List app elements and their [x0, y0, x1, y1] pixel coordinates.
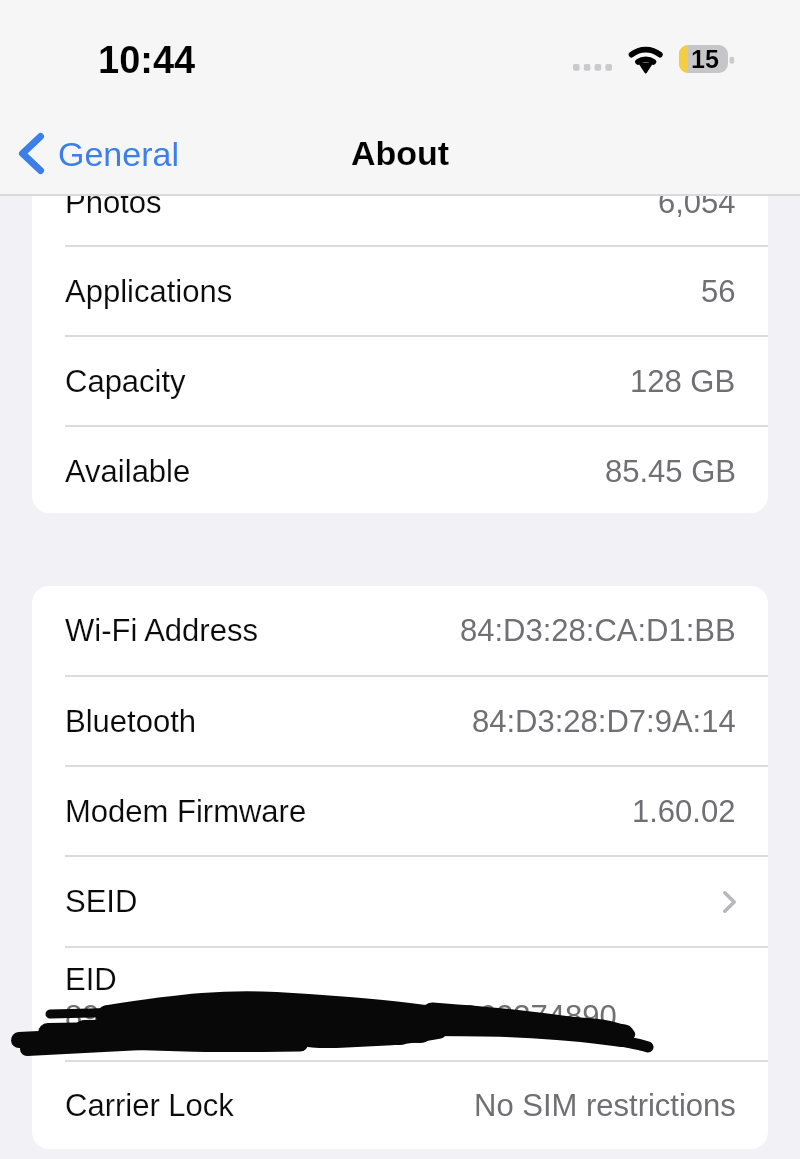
button[interactable]: Applications [32, 247, 768, 335]
staticText: 128 GB [630, 364, 736, 399]
staticText: SEID [65, 884, 138, 919]
button[interactable]: SEID [32, 857, 768, 946]
button[interactable]: Available [32, 427, 768, 513]
staticText: Available [65, 454, 191, 489]
staticText: Wi-Fi Address [65, 613, 258, 648]
button[interactable]: Bluetooth [32, 677, 768, 765]
staticText: 84:D3:28:D7:9A:14 [472, 704, 736, 739]
staticText: 6,054 [658, 196, 736, 220]
staticText: 1.60.02 [632, 794, 736, 829]
staticText: 56 [701, 274, 736, 309]
staticText: Applications [65, 274, 233, 309]
staticText: General [58, 135, 179, 173]
staticText: 10:44 [98, 39, 196, 81]
staticText: 89049032004008882600036262374890 [65, 999, 617, 1034]
staticText: Photos [65, 196, 162, 220]
button[interactable]: Modem Firmware [32, 767, 768, 855]
staticText: EID [65, 962, 117, 997]
staticText: Modem Firmware [65, 794, 307, 829]
staticText: Capacity [65, 364, 186, 399]
button[interactable]: Wi-Fi Address [32, 586, 768, 675]
staticText: 15 [691, 45, 719, 73]
button[interactable]: Capacity [32, 337, 768, 425]
button[interactable]: Photos [32, 196, 768, 245]
staticText: 85.45 GB [605, 454, 736, 489]
button[interactable]: Carrier Lock [32, 1062, 768, 1149]
staticText: About [351, 134, 450, 172]
staticText: Carrier Lock [65, 1088, 234, 1123]
button[interactable]: Back to General [13, 129, 185, 178]
staticText: Bluetooth [65, 704, 196, 739]
staticText: 84:D3:28:CA:D1:BB [460, 613, 736, 648]
button[interactable]: EID [32, 948, 768, 1060]
staticText: No SIM restrictions [474, 1088, 736, 1123]
